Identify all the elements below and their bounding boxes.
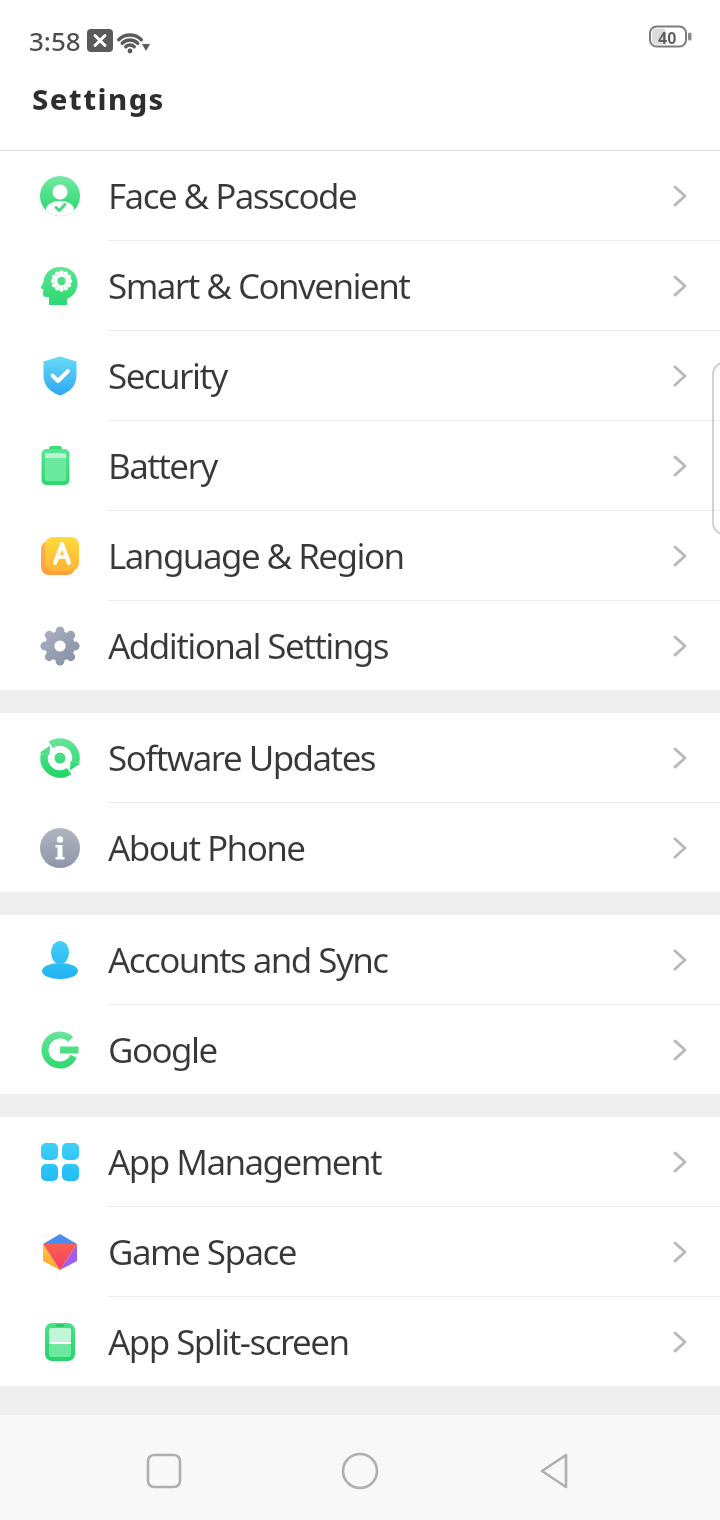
button[interactable]: Security — [0, 331, 720, 420]
staticText: Additional Settings — [108, 622, 673, 670]
staticText: Accounts and Sync — [108, 936, 673, 984]
staticText: About Phone — [108, 824, 673, 872]
staticText: Face & Passcode — [108, 172, 673, 220]
staticText: 3:58 — [29, 23, 81, 58]
button[interactable] — [328, 1439, 392, 1503]
staticText: 40 — [658, 27, 677, 49]
button[interactable]: Game Space — [0, 1207, 720, 1296]
staticText: Smart & Convenient — [108, 262, 673, 310]
staticText: Security — [108, 352, 673, 400]
button[interactable]: About Phone — [0, 803, 720, 892]
button[interactable]: App Split-screen — [0, 1297, 720, 1386]
button[interactable] — [132, 1439, 196, 1503]
staticText: Google — [108, 1026, 673, 1074]
staticText: Software Updates — [108, 734, 673, 782]
staticText: Language & Region — [108, 532, 673, 580]
button[interactable]: Additional Settings — [0, 601, 720, 690]
button[interactable]: App Management — [0, 1117, 720, 1206]
button[interactable]: Software Updates — [0, 713, 720, 802]
staticText: Battery — [108, 442, 673, 490]
staticText: App Management — [108, 1138, 673, 1186]
staticText: Game Space — [108, 1228, 673, 1276]
button[interactable]: Battery — [0, 421, 720, 510]
button[interactable]: Accounts and Sync — [0, 915, 720, 1004]
button[interactable]: Language & Region — [0, 511, 720, 600]
button[interactable]: Google — [0, 1005, 720, 1094]
staticText: App Split-screen — [108, 1318, 673, 1366]
button[interactable] — [524, 1439, 588, 1503]
staticText: Settings — [32, 79, 165, 118]
button[interactable]: Face & Passcode — [0, 151, 720, 240]
button[interactable]: Smart & Convenient — [0, 241, 720, 330]
